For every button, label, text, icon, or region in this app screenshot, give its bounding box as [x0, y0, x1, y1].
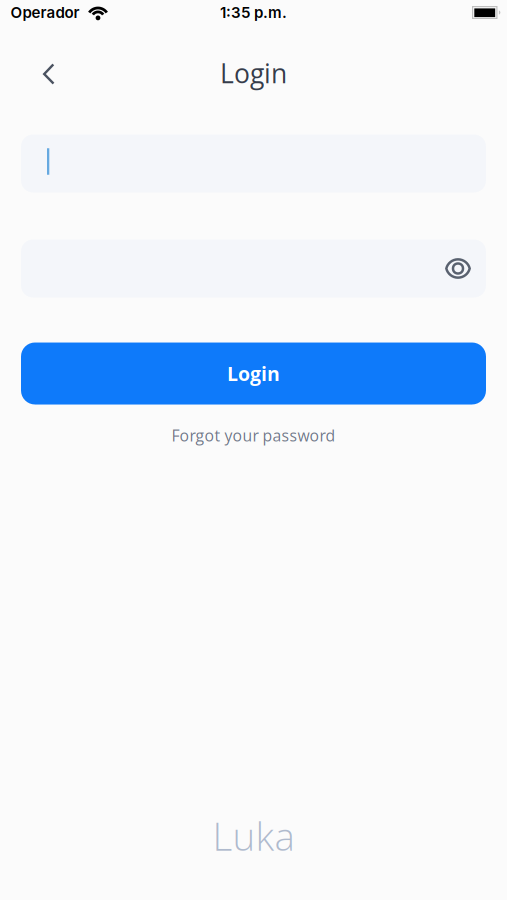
- button[interactable]: Show password: [433, 240, 486, 297]
- staticText: Luka: [212, 810, 294, 862]
- staticText: 1:35 p.m.: [220, 3, 287, 22]
- staticText: Login: [220, 55, 287, 91]
- button[interactable]: Back: [0, 51, 73, 97]
- textField[interactable]: [47, 148, 460, 178]
- button[interactable]: Forgot your password: [163, 420, 343, 450]
- secureTextField[interactable]: [47, 253, 460, 283]
- staticText: Login: [227, 360, 280, 387]
- staticText: Forgot your password: [171, 424, 335, 446]
- button[interactable]: Login: [21, 342, 486, 404]
- staticText: Operador: [10, 3, 79, 22]
